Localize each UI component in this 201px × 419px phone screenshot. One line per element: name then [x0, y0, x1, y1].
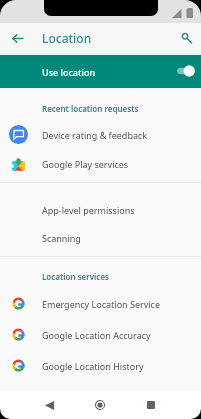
button[interactable]: Back	[35, 391, 63, 419]
button[interactable]: Home	[86, 391, 114, 419]
staticText: Recent location requests	[42, 103, 139, 114]
button[interactable]: Back	[4, 25, 30, 51]
button[interactable]	[0, 196, 201, 224]
button[interactable]: Recent apps	[137, 391, 165, 419]
staticText: Google Location History	[42, 360, 144, 372]
staticText: App-level permissions	[42, 204, 135, 216]
button[interactable]: Use location	[0, 55, 201, 88]
button[interactable]: Search	[173, 25, 199, 51]
staticText: Google Location Accuracy	[42, 329, 151, 341]
staticText: Scanning	[42, 232, 81, 244]
staticText: Location services	[42, 271, 110, 282]
button[interactable]	[0, 288, 201, 319]
button[interactable]	[0, 120, 201, 149]
button[interactable]	[0, 224, 201, 252]
staticText: Use location	[42, 66, 96, 78]
staticText: Emergency Location Service	[42, 298, 161, 310]
button[interactable]	[0, 149, 201, 178]
button[interactable]	[0, 319, 201, 350]
staticText: Google Play services	[42, 158, 129, 170]
staticText: Location	[42, 30, 92, 46]
button[interactable]	[0, 350, 201, 381]
staticText: Device rating & feedback	[42, 129, 148, 141]
